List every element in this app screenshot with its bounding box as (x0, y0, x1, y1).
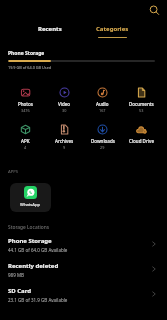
staticText: Recents (38, 25, 62, 33)
staticText: Documents (129, 101, 154, 107)
staticText: 53 (139, 108, 144, 113)
staticText: WhatsApp (20, 202, 41, 208)
staticText: SD Card (8, 287, 32, 295)
button[interactable]: Categories (87, 20, 137, 38)
staticText: Audio (96, 101, 109, 107)
staticText: Photos (18, 101, 33, 107)
button[interactable]: Documents (122, 84, 161, 116)
button[interactable]: Photos (6, 84, 45, 116)
button[interactable]: Downloads (83, 121, 122, 153)
staticText: Categories (96, 25, 129, 33)
button[interactable]: Phone Storage (0, 233, 167, 258)
staticText: Phone Storage (8, 50, 45, 57)
button[interactable]: Archives (45, 121, 84, 153)
button[interactable]: Recently deleted (0, 258, 167, 283)
staticText: Archives (55, 138, 74, 144)
staticText: 44.1 GB of 64.0 GB Available (8, 247, 68, 253)
staticText: Recently deleted (8, 262, 59, 270)
staticText: Phone Storage (8, 237, 52, 245)
button[interactable]: Recents (24, 20, 75, 38)
staticText: 4 (24, 145, 27, 150)
button[interactable]: Cloud Drive (122, 121, 161, 153)
staticText: 167 (99, 108, 106, 113)
staticText: 19.9 GB of 64.0 GB Used (8, 65, 52, 70)
staticText: 23.1 GB of 31.9 GB Available (8, 297, 68, 303)
button[interactable]: SD Card (0, 283, 167, 308)
button[interactable]: APK (6, 121, 45, 153)
button[interactable]: Video (45, 84, 84, 116)
staticText: Storage Locations (8, 224, 50, 231)
button[interactable]: WhatsApp (10, 183, 51, 212)
staticText: APK (21, 138, 30, 144)
staticText: Downloads (91, 138, 115, 144)
staticText: 9 (63, 145, 66, 150)
staticText: 3476 (21, 108, 30, 113)
button[interactable]: Search (146, 2, 163, 19)
staticText: Cloud Drive (129, 138, 154, 144)
staticText: 29 (100, 145, 105, 150)
staticText: 30 (62, 108, 67, 113)
staticText: APPS (8, 169, 19, 175)
staticText: Video (58, 101, 71, 107)
button[interactable]: Audio (83, 84, 122, 116)
staticText: 989 MB (8, 272, 24, 278)
